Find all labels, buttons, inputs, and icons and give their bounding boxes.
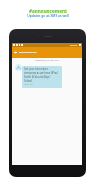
staticText: 6:05 PM (70, 44, 78, 47)
staticText: Wednesday, 30 April 2015 (35, 59, 60, 62)
staticText: School (24, 79, 33, 83)
staticText: Smith #Calcutta Boys' (24, 75, 51, 79)
staticText: Updates go as SMS as well (27, 13, 69, 17)
other: Back (14, 51, 17, 54)
staticText: tomorrow as we have #Paul (24, 71, 58, 75)
staticText: 10:45 PM (24, 83, 33, 86)
staticText: #announcement (29, 8, 67, 14)
staticText: #announcement (19, 51, 37, 54)
staticText: Get your binoculars (24, 67, 48, 71)
button[interactable]: Back (12, 47, 82, 58)
